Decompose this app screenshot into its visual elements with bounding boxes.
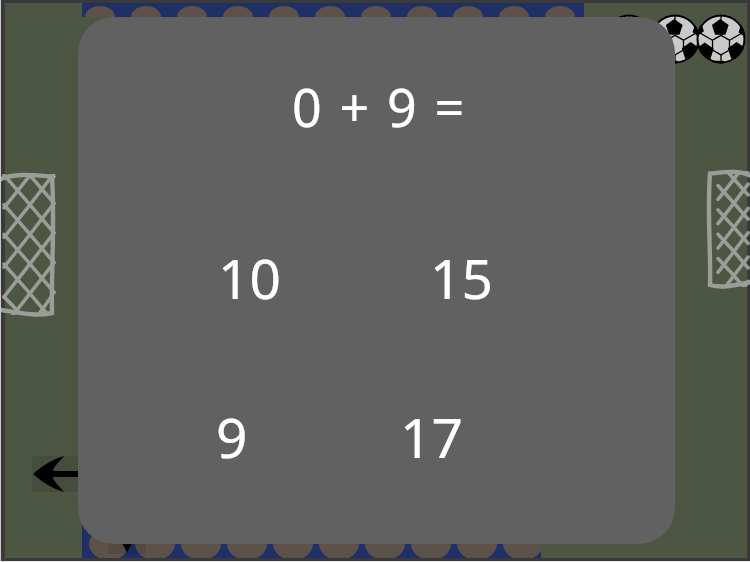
button[interactable]: 10 bbox=[164, 236, 334, 318]
button[interactable]: 9 bbox=[147, 395, 317, 477]
staticText: 15 bbox=[430, 240, 493, 315]
button[interactable]: 17 bbox=[346, 395, 516, 477]
staticText: 10 bbox=[218, 240, 281, 315]
button[interactable]: Back bbox=[32, 456, 94, 492]
staticText: 0 + 9 = bbox=[292, 71, 467, 142]
button[interactable]: Down bbox=[108, 520, 146, 554]
button[interactable]: 15 bbox=[376, 236, 546, 318]
staticText: 9 bbox=[216, 399, 248, 474]
staticText: 17 bbox=[400, 399, 463, 474]
